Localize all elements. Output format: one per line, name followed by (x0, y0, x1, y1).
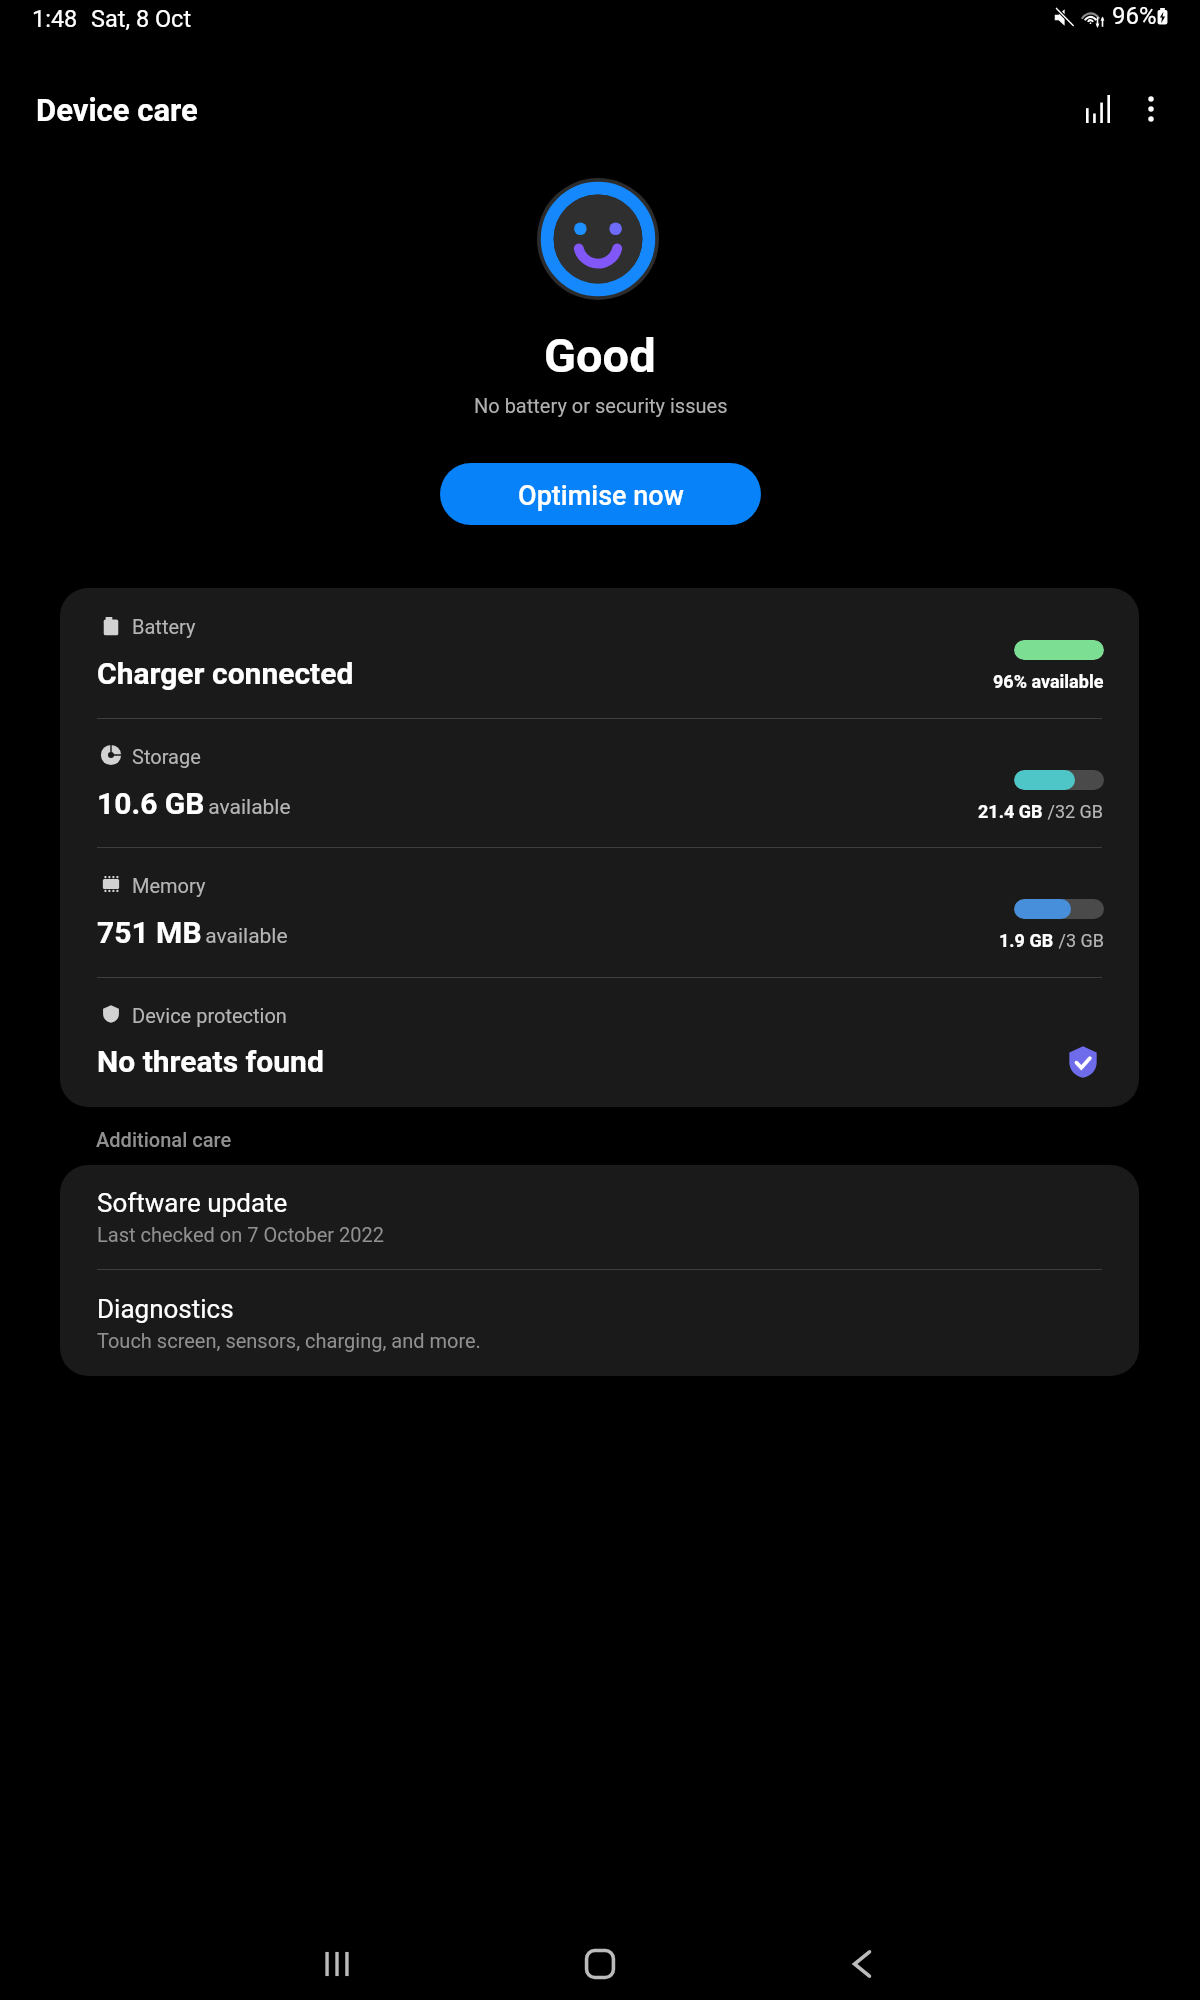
staticText: 21.4 GB (978, 801, 1043, 822)
staticText: Memory (132, 874, 206, 897)
staticText: 10.6 GB (97, 786, 205, 821)
staticText: Last checked on 7 October 2022 (97, 1223, 384, 1246)
button[interactable]: More options (1120, 77, 1182, 139)
button[interactable]: Storage (60, 718, 1139, 848)
staticText: 96% (1112, 2, 1157, 30)
staticText: Device care (36, 92, 198, 128)
staticText: Optimise now (518, 480, 684, 512)
staticText: Diagnostics (97, 1294, 234, 1324)
staticText: Storage (132, 745, 201, 768)
staticText: Software update (97, 1188, 288, 1218)
button[interactable]: Back (819, 1921, 905, 2000)
staticText: available (203, 795, 291, 820)
button[interactable]: Recents (294, 1921, 380, 2000)
button[interactable]: Memory (60, 847, 1139, 977)
staticText: Charger connected (97, 656, 354, 691)
button[interactable]: Software update (60, 1165, 1139, 1269)
button[interactable]: Usage statistics (1067, 77, 1129, 139)
staticText: No battery or security issues (474, 394, 728, 417)
staticText: 751 MB (97, 915, 202, 950)
button[interactable]: Diagnostics (60, 1269, 1139, 1376)
staticText: 1:48 (32, 5, 78, 33)
staticText: Sat, 8 Oct (91, 5, 192, 33)
button[interactable]: Optimise now (440, 463, 761, 525)
staticText: available (200, 924, 288, 949)
button[interactable]: Device protection (60, 977, 1139, 1107)
staticText: Battery (132, 615, 196, 638)
staticText: Touch screen, sensors, charging, and mor… (97, 1329, 481, 1352)
staticText: Good (544, 328, 656, 383)
staticText: 1.9 GB (999, 930, 1054, 951)
button[interactable]: Battery (60, 588, 1139, 718)
staticText: 96% available (993, 671, 1104, 692)
staticText: /3 GB (1054, 930, 1104, 951)
staticText: Additional care (96, 1128, 232, 1151)
staticText: Device protection (132, 1004, 287, 1027)
staticText: /32 GB (1043, 801, 1104, 822)
button[interactable]: Home (557, 1921, 643, 2000)
staticText: No threats found (97, 1044, 324, 1079)
